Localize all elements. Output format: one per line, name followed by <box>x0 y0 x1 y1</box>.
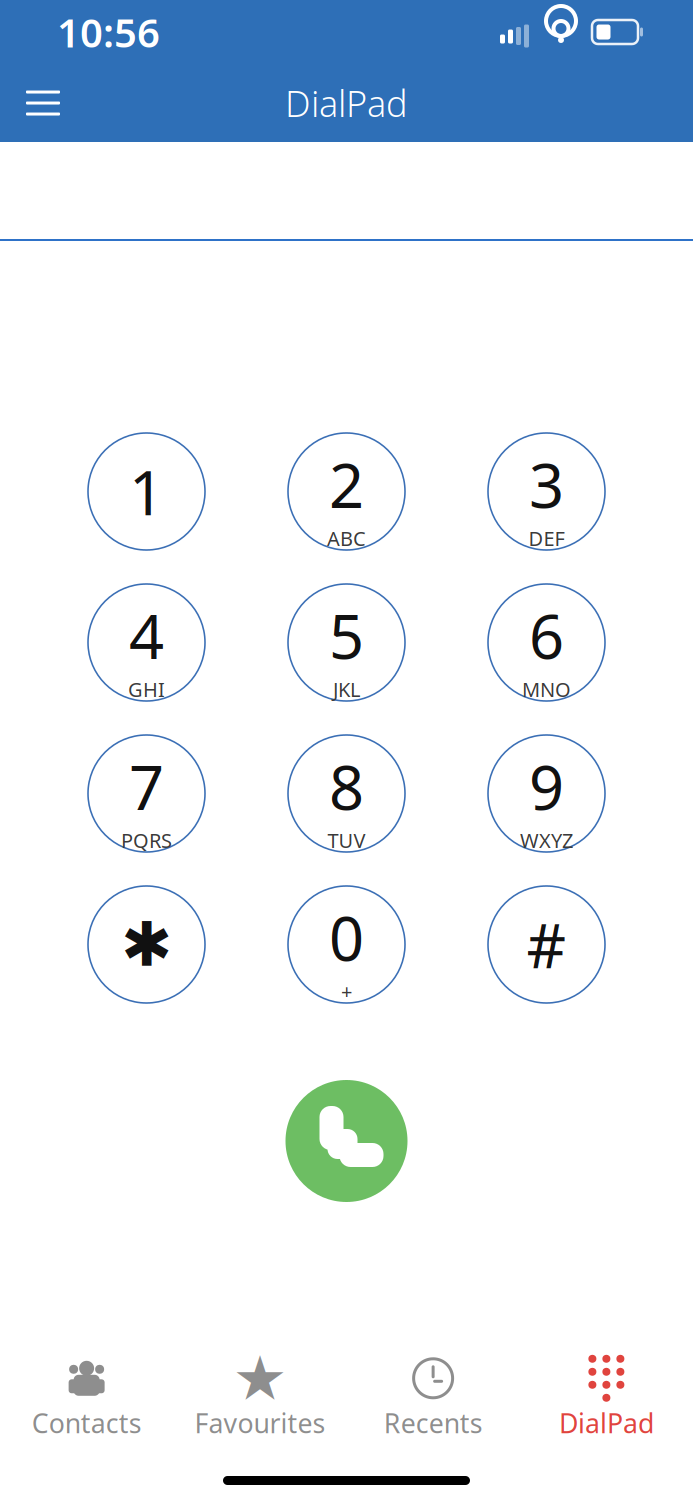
staticText: 0 <box>329 896 364 978</box>
staticText: TUV <box>327 827 365 853</box>
button[interactable]: 8 <box>288 735 405 852</box>
staticText: Recents <box>384 1405 483 1441</box>
button[interactable]: Contacts <box>0 1350 173 1446</box>
staticText: MNO <box>522 676 571 702</box>
button[interactable]: # <box>488 886 605 1003</box>
button[interactable]: 7 <box>88 735 205 852</box>
button[interactable]: ✱ <box>88 886 205 1003</box>
staticText: 8 <box>329 745 364 827</box>
button[interactable]: 6 <box>488 584 605 701</box>
staticText: 7 <box>129 745 164 827</box>
staticText: ★ <box>232 1343 287 1413</box>
staticText: JKL <box>333 676 360 702</box>
button[interactable]: 2 <box>288 433 405 550</box>
staticText: DEF <box>528 525 564 551</box>
button[interactable]: 1 <box>88 433 205 550</box>
staticText: 10:56 <box>57 5 160 58</box>
staticText: WXYZ <box>520 827 573 853</box>
staticText: 4 <box>129 594 164 676</box>
staticText: 6 <box>529 594 564 676</box>
staticText: Favourites <box>194 1405 325 1441</box>
button[interactable]: ★ <box>173 1350 346 1446</box>
button[interactable]: Recents <box>346 1350 520 1446</box>
staticText: 1 <box>129 451 164 532</box>
staticText: Contacts <box>32 1405 142 1441</box>
staticText: 5 <box>329 594 364 676</box>
staticText: # <box>526 904 566 985</box>
staticText: GHI <box>128 676 165 702</box>
button[interactable]: Call <box>285 1080 407 1202</box>
button[interactable]: 3 <box>488 433 605 550</box>
staticText: ✱ <box>121 910 172 979</box>
staticText: 9 <box>529 745 564 827</box>
button[interactable]: 5 <box>288 584 405 701</box>
staticText: DialPad <box>559 1405 654 1441</box>
staticText: + <box>341 978 352 1004</box>
staticText: 3 <box>529 443 564 525</box>
button[interactable]: DialPad <box>520 1350 693 1446</box>
staticText: PQRS <box>121 827 172 853</box>
button[interactable]: 4 <box>88 584 205 701</box>
staticText: ABC <box>327 525 366 551</box>
staticText: 2 <box>329 443 364 525</box>
staticText: DialPad <box>285 79 408 127</box>
button[interactable]: Menu <box>11 71 75 135</box>
button[interactable]: 0 <box>288 886 405 1003</box>
button[interactable]: 9 <box>488 735 605 852</box>
